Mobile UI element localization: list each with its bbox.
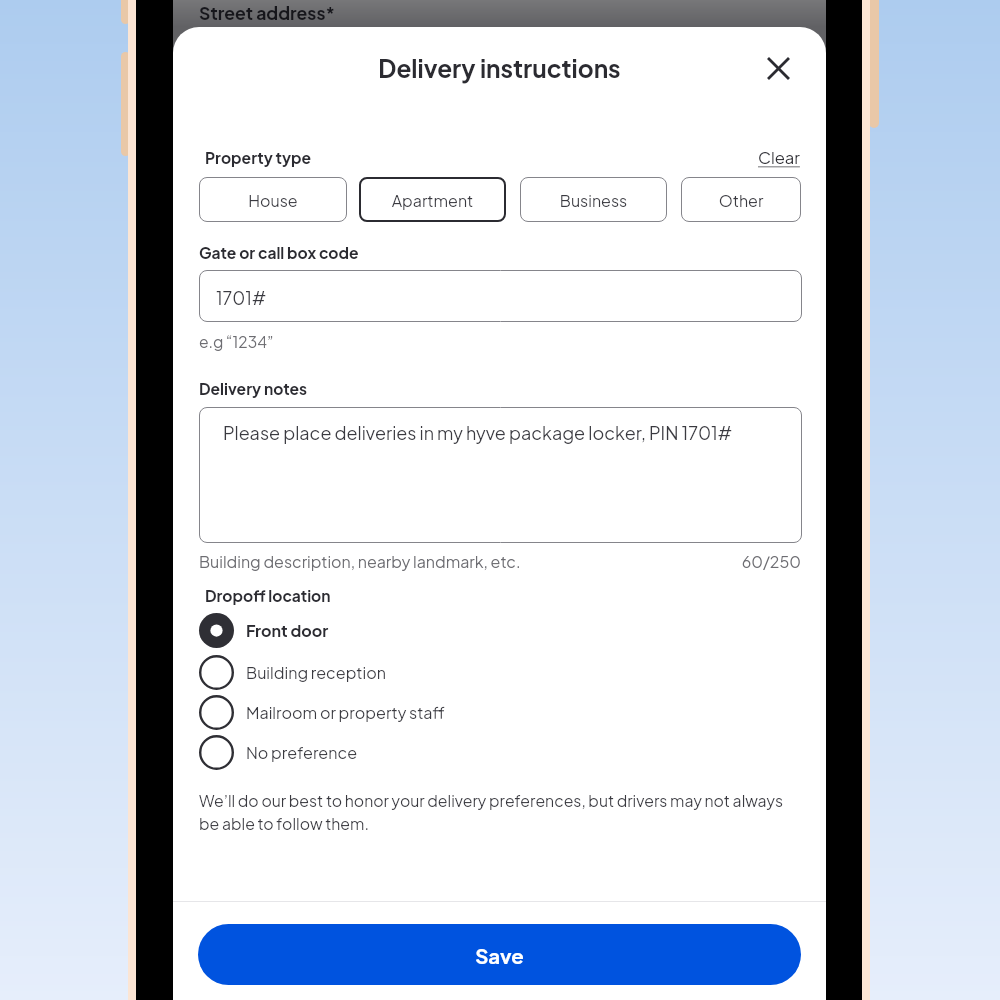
staticText: Gate or call box code bbox=[199, 243, 359, 263]
staticText: Clear bbox=[758, 147, 800, 168]
staticText: Building description, nearby landmark, e… bbox=[199, 551, 521, 571]
button[interactable]: Clear bbox=[758, 149, 800, 170]
staticText: Delivery instructions bbox=[173, 53, 826, 84]
staticText: Property type bbox=[205, 148, 312, 168]
staticText: Building reception bbox=[246, 662, 386, 682]
staticText: Delivery notes bbox=[199, 379, 308, 399]
staticText: Business bbox=[520, 190, 667, 210]
button[interactable]: Business bbox=[520, 177, 667, 222]
button[interactable]: No preference bbox=[198, 732, 801, 774]
staticText: Please place deliveries in my hyve packa… bbox=[223, 421, 733, 444]
staticText: Front door bbox=[246, 620, 329, 640]
button[interactable]: House bbox=[199, 177, 347, 222]
button[interactable] bbox=[199, 407, 802, 543]
button[interactable]: Mailroom or property staff bbox=[198, 692, 801, 734]
staticText: Dropoff location bbox=[205, 586, 331, 606]
staticText: Apartment bbox=[359, 190, 506, 210]
staticText: No preference bbox=[246, 742, 358, 762]
staticText: Street address* bbox=[199, 2, 335, 24]
button[interactable]: Building reception bbox=[198, 652, 801, 694]
button[interactable]: Front door bbox=[198, 610, 801, 652]
staticText: Other bbox=[681, 190, 801, 210]
button[interactable]: Save bbox=[198, 924, 801, 985]
button[interactable]: Close bbox=[755, 45, 802, 92]
button[interactable]: Apartment bbox=[359, 177, 506, 222]
button[interactable] bbox=[199, 270, 802, 322]
staticText: House bbox=[199, 190, 347, 210]
staticText: e.g “1234” bbox=[199, 332, 274, 352]
staticText: Save bbox=[198, 943, 801, 969]
staticText: Mailroom or property staff bbox=[246, 702, 445, 722]
staticText: 1701# bbox=[216, 287, 266, 309]
staticText: We’ll do our best to honor your delivery… bbox=[199, 791, 802, 833]
button[interactable]: Other bbox=[681, 177, 801, 222]
staticText: 60/250 bbox=[173, 551, 801, 571]
